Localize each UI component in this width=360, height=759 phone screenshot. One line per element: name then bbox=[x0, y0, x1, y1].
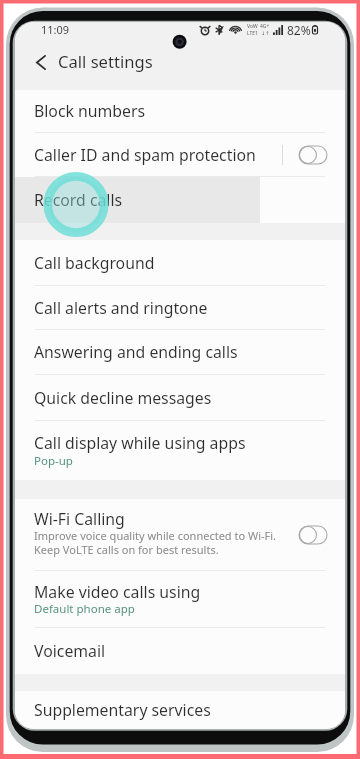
button[interactable]: Block numbers bbox=[15, 90, 345, 132]
staticText: Make video calls using bbox=[34, 581, 201, 603]
button[interactable]: Supplementary services bbox=[15, 691, 345, 729]
staticText: Supplementary services bbox=[34, 699, 211, 721]
button[interactable]: Answering and ending calls bbox=[15, 330, 345, 374]
staticText: 4G+ bbox=[260, 23, 270, 30]
button[interactable] bbox=[15, 133, 345, 176]
button[interactable]: Record calls bbox=[15, 177, 345, 223]
button[interactable]: Call display while using apps bbox=[15, 421, 345, 480]
staticText: LTE1 bbox=[247, 30, 258, 37]
button[interactable]: Voicemail bbox=[15, 628, 345, 674]
staticText: Default phone app bbox=[34, 601, 135, 617]
staticText: ↓↑ bbox=[261, 30, 270, 36]
staticText: Call display while using apps bbox=[34, 432, 246, 454]
button[interactable] bbox=[15, 499, 345, 570]
button[interactable]: Navigate back bbox=[23, 42, 59, 82]
staticText: Block numbers bbox=[34, 100, 146, 122]
button[interactable]: Quick decline messages bbox=[15, 375, 345, 420]
staticText: Improve voice quality while connected to… bbox=[34, 528, 277, 557]
staticText: Wi-Fi Calling bbox=[34, 508, 125, 530]
staticText: Answering and ending calls bbox=[34, 341, 238, 363]
button[interactable]: Toggle Caller ID and spam protection bbox=[292, 138, 334, 172]
staticText: Caller ID and spam protection bbox=[34, 144, 256, 166]
staticText: 82% bbox=[287, 22, 311, 37]
staticText: Call settings bbox=[58, 50, 153, 73]
staticText: VoW bbox=[247, 23, 258, 30]
staticText: Call alerts and ringtone bbox=[34, 297, 208, 319]
button[interactable]: Toggle Wi-Fi Calling bbox=[292, 518, 334, 552]
button[interactable]: Call background bbox=[15, 240, 345, 285]
button[interactable]: Make video calls using bbox=[15, 571, 345, 627]
staticText: Call background bbox=[34, 252, 155, 274]
button[interactable]: Call alerts and ringtone bbox=[15, 286, 345, 329]
staticText: Quick decline messages bbox=[34, 387, 212, 409]
staticText: Voicemail bbox=[34, 640, 106, 662]
staticText: Record calls bbox=[34, 189, 123, 211]
staticText: Pop-up bbox=[34, 453, 73, 469]
staticText: 11:09 bbox=[41, 22, 70, 37]
